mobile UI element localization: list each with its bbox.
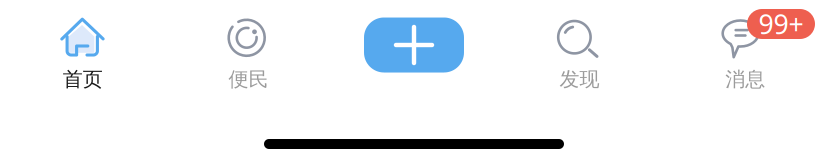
button[interactable]: 消息 [662, 0, 828, 92]
staticText: 发现 [560, 67, 600, 92]
button[interactable]: 首页 [0, 0, 166, 92]
button[interactable]: Create [331, 0, 497, 73]
staticText: 首页 [63, 67, 103, 92]
staticText: 便民 [228, 67, 268, 92]
button[interactable]: 发现 [497, 0, 662, 92]
staticText: 消息 [725, 67, 765, 92]
button[interactable]: 便民 [166, 0, 331, 92]
staticText: 99+ [758, 6, 803, 42]
